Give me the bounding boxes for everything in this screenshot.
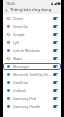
staticText: OneDrive [13,80,52,85]
staticText: Link to Windows [13,48,52,53]
button[interactable]: Toggle notifications [53,97,58,100]
button[interactable]: Maps [3,54,61,62]
staticText: 10:24 [6,1,15,6]
staticText: Gmail Go [13,24,52,29]
button[interactable]: Gmail [3,14,61,22]
button[interactable]: Outlook [3,86,61,94]
staticText: Maps [13,56,52,61]
button[interactable]: Toggle notifications [53,33,58,36]
button[interactable]: Link to Windows [3,46,61,54]
button[interactable]: Lyft [3,38,61,46]
staticText: Google [13,32,52,37]
staticText: Outlook [13,88,52,93]
staticText: Lyft [13,40,52,45]
button[interactable]: Microsoft SwiftKey Keyb [3,70,61,78]
button[interactable]: Messages [3,62,61,70]
button[interactable]: Toggle notifications [53,81,58,84]
staticText: Messages [13,64,52,69]
button[interactable]: Toggle notifications [53,25,58,28]
button[interactable]: Toggle notifications [53,57,58,60]
button[interactable]: Gmail Go [3,22,61,30]
button[interactable]: Google [3,30,61,38]
button[interactable]: Toggle notifications [53,65,58,68]
button[interactable]: OneDrive [3,78,61,86]
button[interactable]: Samsung Find [3,94,61,102]
button[interactable]: Back [3,7,10,14]
button[interactable]: Toggle notifications [53,17,58,20]
button[interactable]: Toggle notifications [53,89,58,92]
button[interactable]: Toggle notifications [53,73,58,76]
button[interactable]: Toggle notifications [53,49,58,52]
button[interactable]: Toggle notifications [53,41,58,44]
button[interactable]: Toggle notifications [53,105,58,108]
staticText: Samsung Find [13,96,52,101]
button[interactable]: Samsung Health [3,102,61,110]
staticText: Samsung Health [13,104,52,109]
staticText: Gmail [13,16,52,21]
staticText: Thông báo ứng dụng [10,7,52,13]
staticText: Microsoft SwiftKey Keyb [13,72,52,77]
